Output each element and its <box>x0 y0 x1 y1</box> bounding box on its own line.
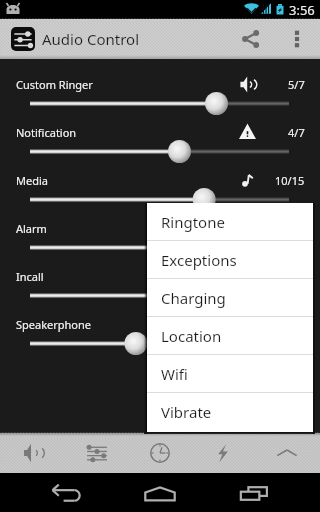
staticText: 10/15 <box>275 173 305 188</box>
button[interactable]: Location <box>147 317 313 355</box>
button[interactable]: Volume <box>3 433 63 473</box>
button[interactable]: Equalizer <box>67 433 127 473</box>
button[interactable]: Incall <box>0 251 320 299</box>
staticText: Exceptions <box>161 250 237 270</box>
button[interactable]: Timer <box>130 433 190 473</box>
button[interactable]: Collapse <box>257 433 317 473</box>
staticText: Incall <box>16 269 44 284</box>
staticText: Location <box>161 326 222 346</box>
button[interactable]: Home <box>124 475 196 512</box>
button[interactable]: Custom Ringer <box>0 59 320 107</box>
staticText: Charging <box>161 288 226 308</box>
staticText: Wifi <box>161 364 188 384</box>
staticText: Ringtone <box>161 212 225 232</box>
staticText: Custom Ringer <box>16 77 93 92</box>
button[interactable]: Notification <box>0 107 320 155</box>
button[interactable]: Share <box>233 19 269 59</box>
button[interactable]: Speakerphone <box>0 299 320 347</box>
button[interactable]: Back <box>30 475 102 512</box>
staticText: Audio Control <box>42 29 140 49</box>
button[interactable]: Media <box>0 155 320 203</box>
button[interactable]: Wifi <box>147 355 313 393</box>
staticText: Vibrate <box>161 402 212 422</box>
staticText: Alarm <box>16 221 47 236</box>
staticText: 3:56 <box>289 1 315 19</box>
button[interactable]: Power <box>193 433 253 473</box>
button[interactable]: Ringtone <box>147 203 313 241</box>
staticText: 4/7 <box>288 125 305 140</box>
button[interactable]: More options <box>281 19 313 59</box>
button[interactable]: Recent apps <box>218 475 290 512</box>
staticText: Speakerphone <box>16 317 92 332</box>
button[interactable]: Vibrate <box>147 393 313 431</box>
button[interactable]: Alarm <box>0 203 320 251</box>
staticText: Media <box>16 173 48 188</box>
staticText: 5/7 <box>288 77 305 92</box>
button[interactable]: Charging <box>147 279 313 317</box>
button[interactable]: Exceptions <box>147 241 313 279</box>
staticText: Notification <box>16 125 77 140</box>
